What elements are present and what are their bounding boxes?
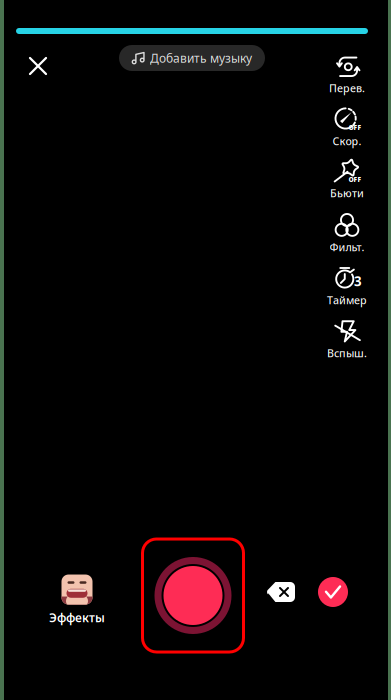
staticText: Бьюти — [330, 186, 364, 200]
button[interactable]: Вспыш. — [316, 319, 378, 361]
button[interactable]: Close — [20, 48, 56, 84]
staticText: Фильт. — [329, 240, 364, 254]
staticText: Эффекты — [49, 609, 105, 625]
staticText: Вспыш. — [327, 346, 367, 360]
button[interactable]: Перев. — [316, 54, 378, 96]
button[interactable]: OFF — [316, 159, 378, 201]
button[interactable]: OFF — [316, 107, 378, 149]
staticText: Добавить музыку — [150, 50, 252, 66]
button[interactable]: 3 — [316, 266, 378, 308]
button[interactable]: Confirm — [313, 572, 353, 612]
button[interactable]: Фильт. — [316, 213, 378, 255]
staticText: 3 — [354, 272, 362, 290]
staticText: Скор. — [332, 134, 361, 148]
button[interactable]: Эффекты — [39, 575, 115, 625]
button[interactable]: Delete last clip — [261, 575, 301, 609]
staticText: Перев. — [329, 81, 365, 95]
staticText: Таймер — [327, 293, 367, 307]
button[interactable]: Record — [142, 539, 243, 652]
staticText: OFF — [348, 123, 361, 132]
staticText: OFF — [348, 175, 361, 184]
button[interactable]: Добавить музыку — [119, 45, 265, 71]
